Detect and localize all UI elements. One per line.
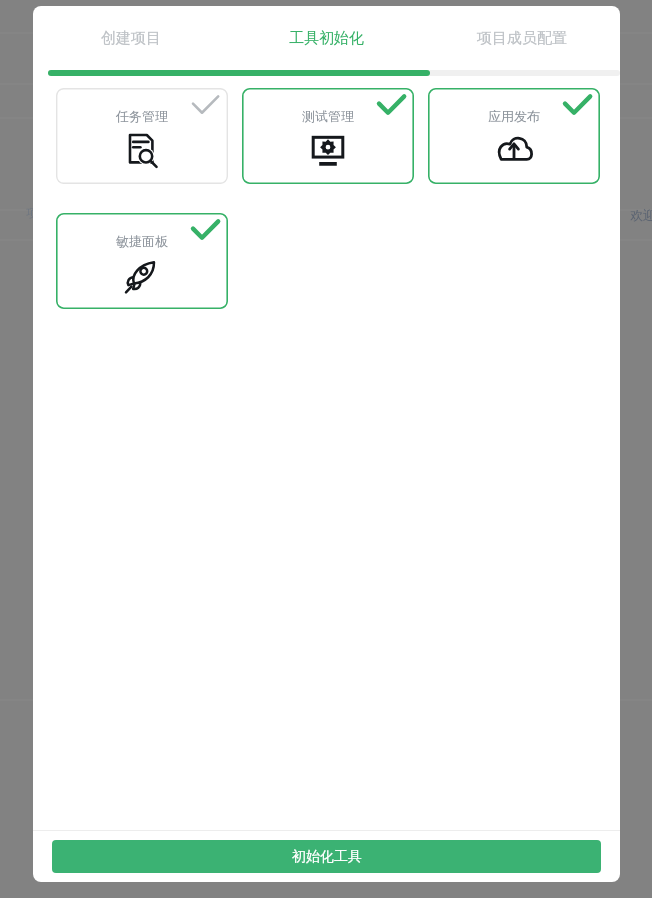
- staticText: 敏捷面板: [116, 233, 168, 249]
- button[interactable]: 应用发布: [428, 88, 600, 184]
- button[interactable]: 敏捷面板: [56, 213, 228, 309]
- button[interactable]: 项目成员配置: [424, 6, 620, 70]
- staticText: 工具初始化: [289, 29, 364, 48]
- staticText: 项目成员配置: [477, 29, 567, 48]
- staticText: 项: [26, 205, 38, 220]
- button[interactable]: 创建项目: [33, 6, 228, 70]
- staticText: 测试管理: [302, 108, 354, 124]
- staticText: 创建项目: [101, 29, 161, 48]
- staticText: 应用发布: [488, 108, 540, 124]
- button[interactable]: 初始化工具: [52, 840, 601, 873]
- staticText: 初始化工具: [292, 848, 362, 866]
- staticText: 任务管理: [116, 108, 168, 124]
- staticText: 欢迎: [630, 207, 652, 223]
- button[interactable]: 测试管理: [242, 88, 414, 184]
- button[interactable]: 任务管理: [56, 88, 228, 184]
- button[interactable]: 工具初始化: [228, 6, 424, 70]
